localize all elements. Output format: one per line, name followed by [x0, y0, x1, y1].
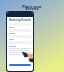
- button[interactable]: Confirm booking: [9, 64, 31, 66]
- staticText: Booking Details: [9, 18, 31, 22]
- staticText: Place your Service: [0, 4, 64, 11]
- other: Tap: [0, 0, 64, 72]
